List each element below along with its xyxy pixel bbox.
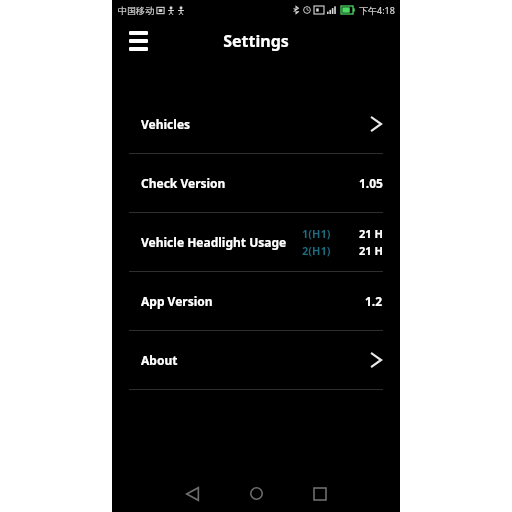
staticText: 1(H1)	[302, 226, 331, 241]
staticText: Vehicle Headlight Usage	[141, 234, 287, 250]
button[interactable]: Check Version	[112, 154, 400, 212]
staticText: 21 H	[359, 243, 383, 258]
button[interactable]: Home	[228, 475, 284, 512]
button[interactable]: Back	[164, 475, 220, 512]
staticText: App Version	[141, 293, 213, 309]
staticText: 下午4:18	[359, 4, 395, 16]
staticText: 1.05	[359, 175, 383, 191]
staticText: Vehicles	[141, 116, 191, 132]
staticText: About	[141, 352, 178, 368]
staticText: 21 H	[359, 226, 383, 241]
staticText: Settings	[223, 30, 289, 52]
button[interactable]: About	[112, 331, 400, 389]
staticText: Check Version	[141, 175, 226, 191]
staticText: 2(H1)	[302, 243, 331, 258]
button[interactable]: Vehicles	[112, 95, 400, 153]
button[interactable]: Open navigation menu	[120, 23, 156, 59]
staticText: 1.2	[365, 293, 383, 309]
button[interactable]: Recent apps	[292, 475, 348, 512]
staticText: 中国移动	[118, 5, 154, 16]
button[interactable]: Vehicle Headlight Usage	[112, 213, 400, 271]
button[interactable]: App Version	[112, 272, 400, 330]
